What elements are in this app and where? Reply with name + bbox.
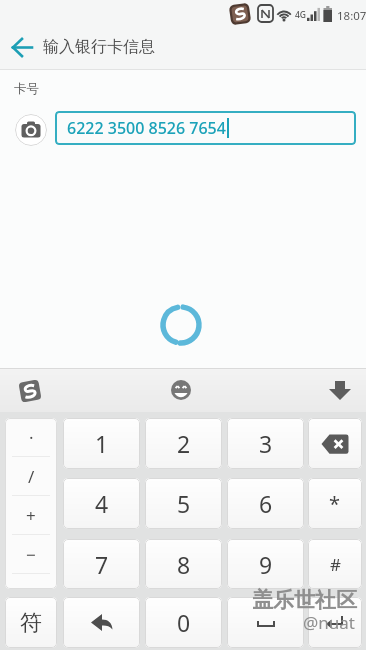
button[interactable] (16, 377, 44, 405)
button[interactable]: 9 (227, 539, 304, 589)
button[interactable]: 符 (5, 597, 57, 648)
staticText: 5 (177, 488, 191, 519)
button[interactable] (15, 114, 47, 146)
staticText: 6222 3500 8526 7654 (67, 117, 226, 139)
button[interactable] (227, 597, 304, 648)
staticText: 1 (95, 428, 109, 459)
staticText: 0 (177, 607, 191, 638)
button[interactable]: 0 (145, 597, 222, 648)
button[interactable] (308, 597, 362, 648)
staticText: * (329, 490, 341, 517)
button[interactable] (308, 418, 362, 469)
button[interactable]: 3 (227, 418, 304, 469)
button[interactable] (326, 376, 354, 404)
button[interactable]: 1 (63, 418, 140, 469)
staticText: 输入银行卡信息 (43, 37, 155, 57)
staticText: 8 (177, 549, 191, 580)
button[interactable] (0, 28, 366, 70)
staticText: 7 (95, 549, 109, 580)
staticText: 2 (177, 428, 191, 459)
staticText: 盖乐世社区 (252, 587, 357, 613)
staticText: · (29, 426, 34, 449)
button[interactable]: 4 (63, 478, 140, 529)
button[interactable]: * (308, 478, 362, 529)
staticText: 3 (259, 428, 273, 459)
staticText: @nuat (303, 611, 355, 634)
staticText: 4G (295, 9, 307, 21)
button[interactable]: · (5, 418, 57, 589)
button[interactable]: # (308, 539, 362, 589)
button[interactable]: 8 (145, 539, 222, 589)
staticText: − (26, 543, 36, 566)
staticText: 18:07 (337, 8, 366, 24)
staticText: + (26, 504, 36, 527)
button[interactable]: 7 (63, 539, 140, 589)
staticText: / (28, 465, 35, 488)
staticText: 符 (20, 609, 42, 637)
button[interactable]: 2 (145, 418, 222, 469)
button[interactable]: 6 (227, 478, 304, 529)
staticText: 4 (95, 488, 109, 519)
staticText: # (330, 553, 341, 576)
staticText: 卡号 (14, 81, 39, 97)
button[interactable]: 6222 3500 8526 7654 (55, 111, 356, 145)
staticText: 6 (259, 488, 273, 519)
button[interactable] (63, 597, 140, 648)
staticText: 9 (259, 549, 273, 580)
button[interactable]: 5 (145, 478, 222, 529)
button[interactable] (167, 376, 195, 404)
